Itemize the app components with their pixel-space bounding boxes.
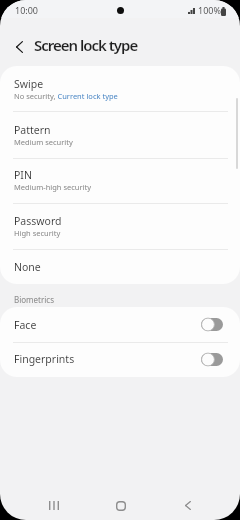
- staticText: No security, Current lock type: [14, 91, 118, 101]
- button[interactable]: [0, 307, 240, 342]
- staticText: High security: [14, 228, 61, 238]
- staticText: Screen lock type: [34, 35, 138, 55]
- button[interactable]: [0, 66, 240, 112]
- button[interactable]: Back: [7, 34, 32, 59]
- staticText: Fingerprints: [14, 352, 75, 366]
- button[interactable]: Home: [105, 490, 136, 520]
- staticText: PIN: [14, 168, 32, 182]
- staticText: Password: [14, 214, 62, 228]
- button[interactable]: [0, 203, 240, 249]
- button[interactable]: Back: [172, 490, 203, 520]
- staticText: 10:00: [15, 4, 39, 16]
- button[interactable]: [0, 158, 240, 203]
- button[interactable]: [0, 112, 240, 158]
- staticText: 100%: [198, 4, 221, 16]
- staticText: Swipe: [14, 77, 44, 91]
- staticText: Face: [14, 318, 37, 332]
- staticText: Medium-high security: [14, 182, 92, 192]
- staticText: Medium security: [14, 137, 73, 147]
- staticText: Biometrics: [14, 294, 55, 305]
- button[interactable]: Recent apps: [38, 490, 69, 520]
- staticText: None: [14, 260, 41, 274]
- button[interactable]: [0, 249, 240, 284]
- button[interactable]: [0, 342, 240, 377]
- staticText: Pattern: [14, 123, 51, 137]
